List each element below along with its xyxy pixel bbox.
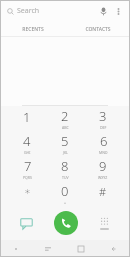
staticText: ∗ [24, 185, 31, 198]
staticText: WXYZ [98, 175, 108, 180]
staticText: CONTACTS [85, 26, 111, 33]
staticText: JKL [63, 150, 68, 155]
staticText: 1 [23, 108, 31, 126]
staticText: 0 [61, 182, 69, 200]
staticText: Search [17, 6, 40, 16]
button[interactable]: Call [46, 206, 85, 240]
staticText: 7 [24, 157, 32, 175]
staticText: MNO [99, 150, 108, 155]
button[interactable]: 2 [46, 106, 84, 131]
button[interactable]: # [84, 181, 122, 206]
button[interactable]: Back [97, 240, 130, 257]
staticText: RECENTS [22, 26, 44, 33]
button[interactable]: Voice search [95, 3, 111, 19]
button[interactable]: Recents [32, 240, 64, 257]
staticText: 6 [100, 132, 108, 150]
staticText: 4 [23, 132, 31, 150]
button[interactable]: 5 [46, 131, 84, 156]
button[interactable]: 6 [84, 131, 122, 156]
button[interactable]: 0 [46, 181, 84, 206]
staticText: 3 [99, 107, 107, 125]
button[interactable]: Hide keypad [85, 206, 124, 240]
staticText: 9 [99, 157, 107, 175]
staticText: # [99, 184, 107, 199]
button[interactable]: 4 [8, 131, 46, 156]
button[interactable]: Menu [0, 240, 32, 257]
button[interactable]: CONTACTS [65, 22, 130, 36]
staticText: + [64, 200, 67, 205]
button[interactable]: More options [111, 4, 125, 18]
button[interactable]: ∗ [8, 181, 46, 206]
button[interactable]: 7 [8, 156, 46, 181]
button[interactable]: RECENTS [0, 22, 65, 36]
staticText: 5 [61, 132, 69, 150]
button[interactable]: 3 [84, 106, 122, 131]
staticText: GHI [24, 150, 31, 155]
staticText: 8 [61, 157, 69, 175]
staticText: TUV [62, 175, 69, 180]
button[interactable]: Search [7, 6, 95, 16]
staticText: 2 [61, 107, 69, 125]
button[interactable]: 1 [8, 106, 46, 131]
staticText: DEF [100, 125, 107, 130]
staticText: PQRS [23, 175, 32, 180]
button[interactable]: 8 [46, 156, 84, 181]
button[interactable]: Message [6, 206, 46, 240]
button[interactable]: Home [64, 240, 97, 257]
button[interactable]: 9 [84, 156, 122, 181]
staticText: ABC [62, 125, 69, 130]
